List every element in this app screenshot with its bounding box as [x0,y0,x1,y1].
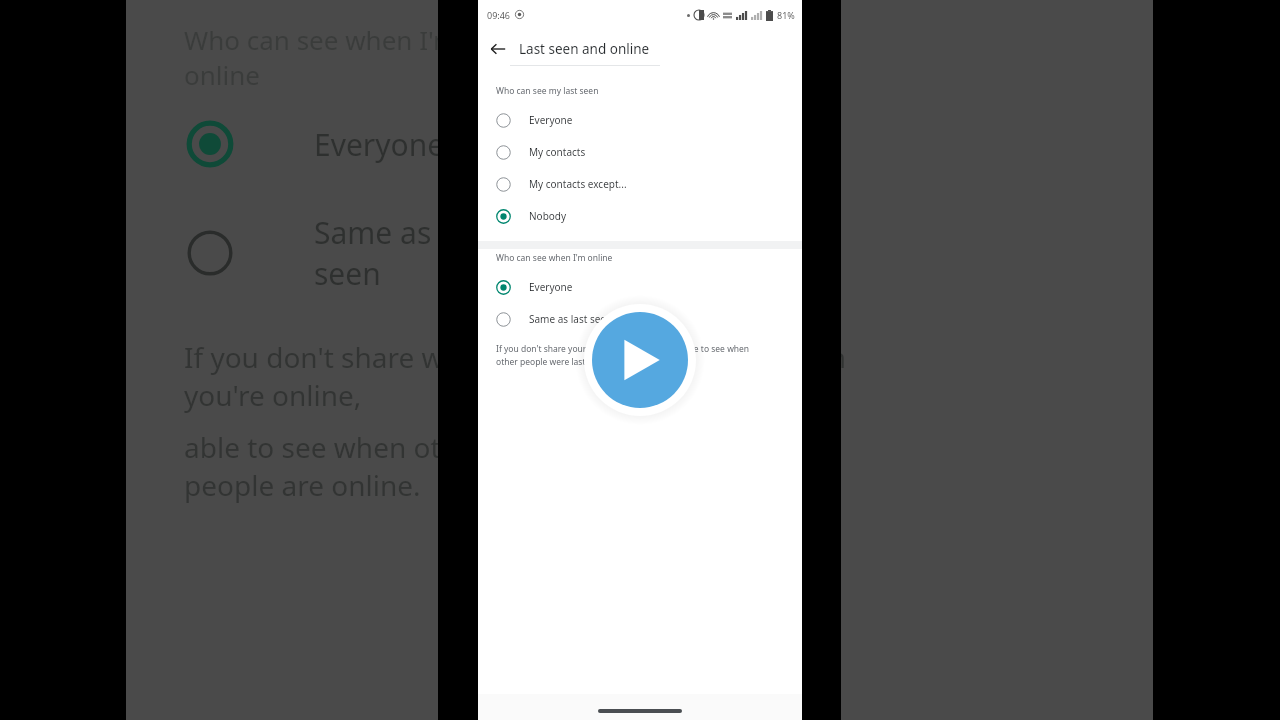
staticText: Everyone [529,280,573,294]
staticText: Everyone [529,113,573,127]
staticText: Last seen and online [519,40,650,58]
button[interactable]: My contacts except... [478,168,802,200]
staticText: Who can see when I'm online [184,22,438,92]
staticText: My contacts [529,145,586,159]
staticText: If you don't share when you're online, [184,338,438,414]
staticText: My contacts except... [529,177,627,191]
button[interactable]: Back [478,29,518,69]
staticText: Same as last seen [314,212,438,294]
staticText: Nobody [529,209,567,223]
button[interactable]: My contacts [478,136,802,168]
staticText: 81% [777,9,795,21]
button[interactable]: Same as last seen [478,303,802,335]
staticText: If you don't share when you're online, [841,338,848,414]
staticText: Who can see my last seen [496,85,599,97]
button[interactable]: Everyone [478,271,802,303]
staticText: Everyone [314,124,438,165]
button[interactable]: Nobody [478,200,802,232]
staticText: 09:46 [487,9,511,21]
button[interactable]: Play [575,295,705,425]
staticText: Who can see when I'm online [496,252,613,264]
button[interactable]: Everyone [478,104,802,136]
staticText: If you don't share your last seen, you w… [496,343,770,368]
staticText: Same as last seen [529,312,613,326]
staticText: able to see when other people are online… [184,428,438,504]
